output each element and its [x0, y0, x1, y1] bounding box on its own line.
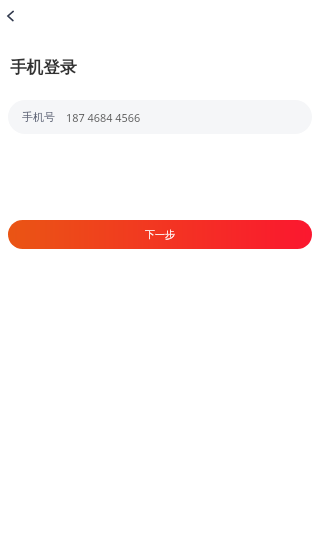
- button[interactable]: 下一步: [8, 220, 312, 249]
- staticText: 下一步: [145, 228, 175, 241]
- staticText: 187 4684 4566: [66, 110, 141, 125]
- staticText: 手机号: [22, 110, 55, 124]
- button[interactable]: 手机号: [8, 100, 312, 134]
- staticText: 手机登录: [10, 57, 77, 78]
- button[interactable]: Back: [1, 5, 23, 27]
